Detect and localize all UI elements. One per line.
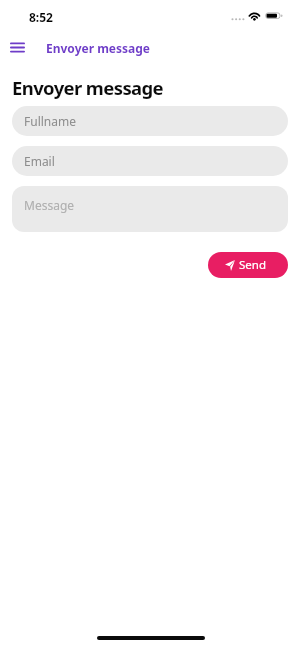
button[interactable]: Fullname bbox=[12, 106, 288, 136]
button[interactable]: Envoyer message bbox=[44, 38, 148, 56]
button[interactable]: Email bbox=[12, 146, 288, 176]
button[interactable]: Message bbox=[12, 186, 288, 232]
staticText: Fullname bbox=[24, 113, 76, 129]
staticText: Message bbox=[24, 197, 75, 213]
staticText: Email bbox=[24, 153, 55, 169]
staticText: Send bbox=[239, 257, 266, 273]
staticText: Envoyer message bbox=[46, 40, 150, 56]
button[interactable]: Send bbox=[208, 252, 288, 278]
button[interactable]: Menu bbox=[6, 36, 30, 56]
staticText: Envoyer message bbox=[12, 75, 164, 100]
staticText: 8:52 bbox=[29, 9, 53, 25]
